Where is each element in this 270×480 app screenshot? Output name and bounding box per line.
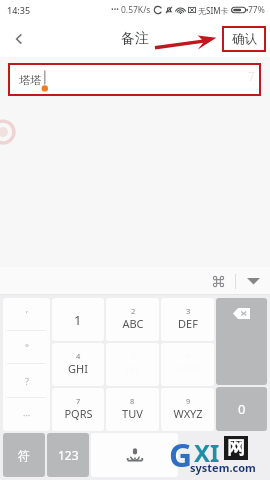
button[interactable]: 8 [106, 388, 159, 431]
button[interactable]: 0 [216, 387, 267, 431]
staticText: 3 [186, 306, 191, 316]
button[interactable]: Hide keyboard [236, 267, 270, 295]
staticText: 确认 [232, 31, 257, 47]
staticText: 0 [238, 400, 246, 418]
staticText: TUV [122, 406, 143, 421]
button[interactable]: 9 [161, 388, 214, 431]
staticText: 7 [248, 68, 255, 84]
button[interactable]: 2 [106, 298, 159, 341]
staticText: 符 [18, 448, 30, 463]
staticText: ° [25, 341, 29, 353]
staticText: 14:35 [7, 4, 31, 16]
staticText: 网 [227, 437, 245, 460]
button[interactable]: Backspace [216, 298, 267, 385]
staticText: ’ [26, 308, 28, 320]
staticText: 0.57K/s [121, 4, 151, 16]
button[interactable]: Space, voice input [91, 433, 178, 477]
button[interactable]: 3 [161, 298, 214, 341]
staticText: ? [25, 375, 29, 387]
staticText: 7 [76, 396, 81, 406]
button[interactable]: 123 [47, 433, 89, 477]
button[interactable]: 4 [52, 343, 104, 386]
staticText: WXYZ [173, 406, 203, 421]
staticText: GHI [68, 361, 88, 376]
button[interactable]: Back [0, 20, 37, 57]
staticText: ··· [23, 409, 31, 421]
staticText: 塔塔 [19, 73, 41, 87]
button[interactable]: 符 [3, 433, 45, 477]
staticText: XI [194, 436, 220, 469]
staticText: ABC [122, 316, 144, 331]
staticText: 9 [186, 396, 191, 406]
staticText: PQRS [64, 406, 93, 421]
button[interactable]: 1 [52, 298, 104, 341]
button[interactable]: ? [3, 364, 50, 397]
button[interactable]: 7 [52, 388, 104, 431]
staticText: ••• [111, 5, 119, 15]
staticText: 4 [76, 351, 81, 361]
staticText: 2 [131, 306, 136, 316]
button[interactable]: 确认 [222, 26, 266, 52]
staticText: 1 [74, 311, 82, 329]
button[interactable]: 塔塔 [10, 65, 259, 94]
button[interactable]: Keyboard settings [201, 267, 235, 295]
staticText: DEF [178, 316, 198, 331]
staticText: 8 [130, 396, 135, 406]
staticText: 77% [248, 4, 265, 16]
staticText: system.com [190, 460, 256, 475]
staticText: 123 [58, 447, 79, 463]
staticText: 无SIM卡 [198, 5, 229, 16]
staticText: G [169, 433, 193, 475]
staticText: 备注 [121, 30, 149, 48]
